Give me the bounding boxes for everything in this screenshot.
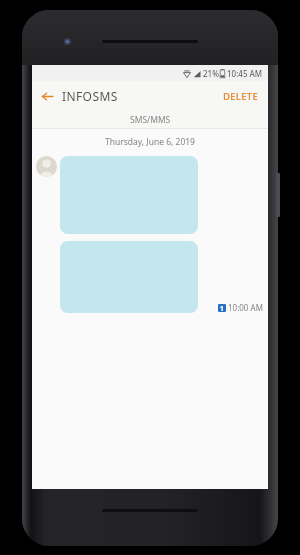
staticText: DELETE: [223, 90, 259, 103]
button[interactable]: Back: [32, 81, 62, 111]
button[interactable]: Contact photo: [36, 156, 57, 177]
staticText: 21%: [203, 68, 219, 79]
button[interactable]: DELETE: [219, 84, 263, 109]
button[interactable]: SMS/MMS: [32, 111, 268, 128]
staticText: INFOSMS: [62, 88, 118, 104]
staticText: Thursday, June 6, 2019: [105, 136, 195, 148]
staticText: SMS/MMS: [130, 114, 171, 126]
staticText: 10:45 AM: [227, 68, 263, 79]
button[interactable]: [60, 241, 198, 313]
button[interactable]: [60, 156, 198, 234]
staticText: 1: [220, 304, 224, 312]
staticText: 10:00 AM: [228, 302, 263, 313]
